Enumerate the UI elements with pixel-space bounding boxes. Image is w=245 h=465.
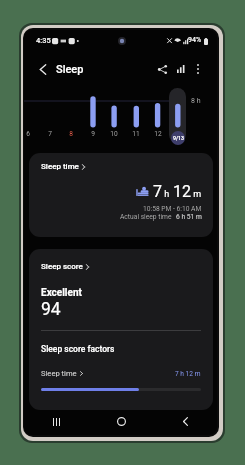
staticText: 9/13 xyxy=(173,135,184,141)
staticText: Actual sleep time xyxy=(120,213,172,221)
staticText: 12 xyxy=(173,182,191,201)
staticText: 6 xyxy=(24,130,37,138)
button[interactable]: Recent apps xyxy=(24,408,89,435)
staticText: 9 xyxy=(84,130,102,138)
staticText: Sleep time xyxy=(41,369,77,378)
button[interactable]: Navigate up xyxy=(32,58,54,80)
staticText: 7 xyxy=(41,130,59,138)
button[interactable]: Sleep time xyxy=(41,369,201,378)
staticText: 12 xyxy=(149,130,167,138)
staticText: 11 xyxy=(127,130,145,138)
button[interactable]: More options xyxy=(187,58,209,80)
staticText: Sleep score xyxy=(41,262,83,271)
staticText: 94 xyxy=(41,299,61,320)
staticText: 8 h xyxy=(191,97,201,105)
staticText: Sleep xyxy=(56,63,84,76)
staticText: 8 xyxy=(62,130,80,138)
staticText: h xyxy=(162,189,170,200)
staticText: m xyxy=(191,189,202,200)
button[interactable]: Home xyxy=(89,408,153,435)
button[interactable]: Share xyxy=(151,58,173,80)
staticText: Sleep score factors xyxy=(41,344,115,354)
staticText: Excellent xyxy=(41,287,82,299)
button[interactable]: Chart view xyxy=(170,58,192,80)
staticText: 7 xyxy=(153,182,162,201)
staticText: 7 h 12 m xyxy=(175,370,201,378)
button[interactable]: Back xyxy=(153,408,217,435)
staticText: Sleep time xyxy=(41,162,79,171)
button[interactable]: Sleep time xyxy=(29,153,213,237)
button[interactable]: Sleep score xyxy=(41,262,89,271)
staticText: 10:58 PM - 6:10 AM xyxy=(143,205,202,213)
staticText: 10 xyxy=(105,130,123,138)
staticText: 94% xyxy=(188,36,202,44)
staticText: 6 h 51 m xyxy=(176,213,202,221)
staticText: 4:35 xyxy=(36,36,51,45)
